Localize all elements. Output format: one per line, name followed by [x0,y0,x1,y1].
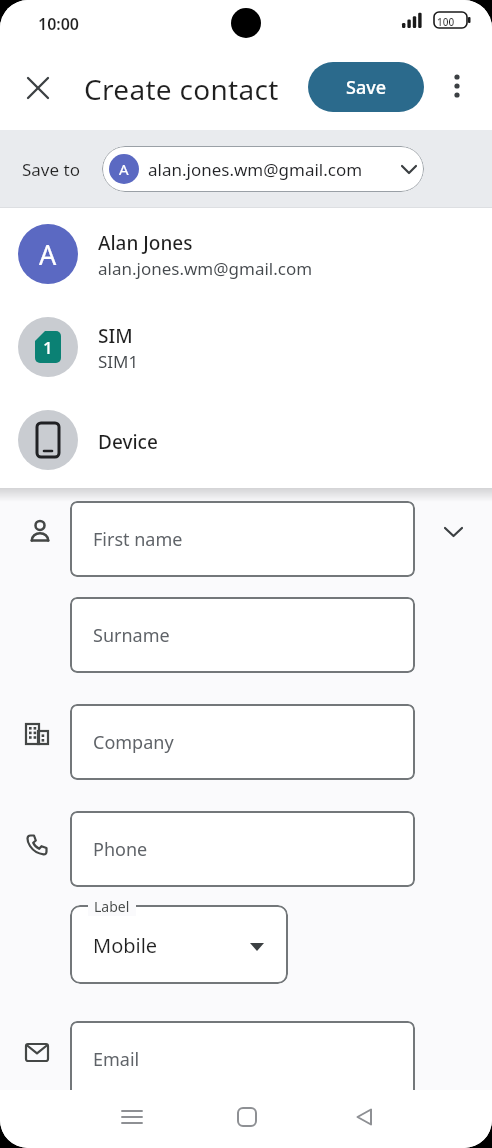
staticText: Label [94,897,130,916]
button[interactable]: Email [70,1021,415,1097]
staticText: Device [98,429,158,455]
button[interactable] [342,1095,386,1139]
button[interactable] [225,1095,269,1139]
button[interactable] [433,512,473,552]
staticText: SIM1 [98,350,139,373]
staticText: First name [93,527,183,552]
button[interactable]: First name [70,501,415,577]
staticText: alan.jones.wm@gmail.com [98,257,313,280]
button[interactable]: Phone [70,811,415,887]
staticText: A [39,236,57,273]
staticText: 10:00 [38,13,80,35]
button[interactable] [437,66,477,106]
staticText: Alan Jones [98,230,193,256]
staticText: Save [346,75,387,100]
staticText: Phone [93,837,148,862]
staticText: 100 [437,15,455,29]
staticText: Save to [22,158,80,181]
staticText: SIM [98,323,133,349]
button[interactable]: 1 [0,301,492,394]
button[interactable]: A [0,208,492,301]
staticText: 1 [43,336,53,359]
button[interactable] [16,66,60,110]
button[interactable]: Surname [70,597,415,673]
button[interactable]: Mobile [70,905,288,984]
staticText: Email [93,1047,140,1072]
staticText: Mobile [93,932,158,959]
button[interactable] [110,1095,154,1139]
staticText: Create contact [84,70,279,108]
staticText: Surname [93,623,170,648]
button[interactable]: Device [0,394,492,487]
staticText: Company [93,730,174,755]
button[interactable]: A [102,146,424,192]
staticText: A [119,159,129,179]
button[interactable]: Company [70,704,415,780]
button[interactable]: Save [308,62,424,112]
staticText: alan.jones.wm@gmail.com [148,158,363,181]
